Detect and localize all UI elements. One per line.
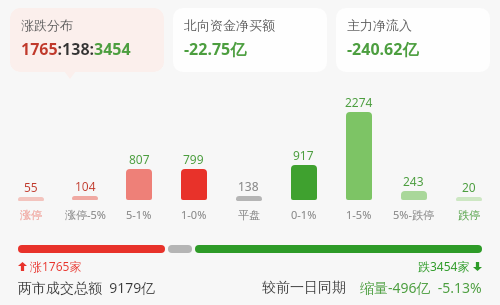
button[interactable]: 243 [386, 82, 441, 222]
staticText: 涨1765家 [30, 258, 82, 274]
staticText: 104 [75, 178, 96, 194]
staticText: 较前一日同期 [262, 279, 346, 297]
staticText: 平盘 [238, 208, 260, 222]
staticText: 5%-跌停 [393, 207, 434, 222]
staticText: 243 [403, 173, 424, 189]
button[interactable]: 807 [112, 82, 166, 222]
staticText: 两市成交总额 9179亿 [18, 278, 156, 297]
staticText: 涨跌分布 [21, 17, 73, 33]
staticText: 1-5% [346, 207, 372, 222]
button[interactable]: 55 [4, 82, 58, 222]
staticText: 2274 [345, 94, 373, 110]
staticText: 涨停-5% [65, 207, 106, 222]
staticText: -22.75亿 [184, 38, 247, 60]
staticText: 917 [293, 147, 314, 163]
staticText: 1765:138:3454 [21, 38, 131, 60]
button[interactable]: 2274 [331, 82, 386, 222]
other: Down [473, 262, 482, 271]
button[interactable]: 涨跌分布 [10, 8, 164, 72]
button[interactable]: 北向资金净买额 [173, 8, 327, 72]
staticText: 主力净流入 [347, 17, 412, 33]
staticText: 北向资金净买额 [184, 17, 275, 33]
staticText: 799 [183, 151, 204, 167]
staticText: 缩量-496亿 -5.13% [360, 278, 482, 297]
staticText: 55 [24, 179, 38, 195]
button[interactable]: 20 [441, 82, 496, 222]
other: Up [18, 262, 27, 271]
staticText: -240.62亿 [347, 38, 419, 60]
staticText: 807 [129, 151, 150, 167]
button[interactable]: 主力净流入 [336, 8, 490, 72]
staticText: 138 [238, 178, 259, 194]
staticText: 1-0% [181, 207, 207, 222]
staticText: 跌3454家 [418, 258, 470, 274]
staticText: 0-1% [291, 207, 317, 222]
staticText: 涨停 [20, 208, 42, 222]
staticText: 5-1% [126, 207, 152, 222]
button[interactable]: 917 [276, 82, 331, 222]
staticText: 跌停 [458, 208, 480, 222]
button[interactable]: 799 [166, 82, 221, 222]
staticText: 20 [462, 179, 476, 195]
button[interactable]: 104 [58, 82, 112, 222]
button[interactable]: 138 [221, 82, 276, 222]
